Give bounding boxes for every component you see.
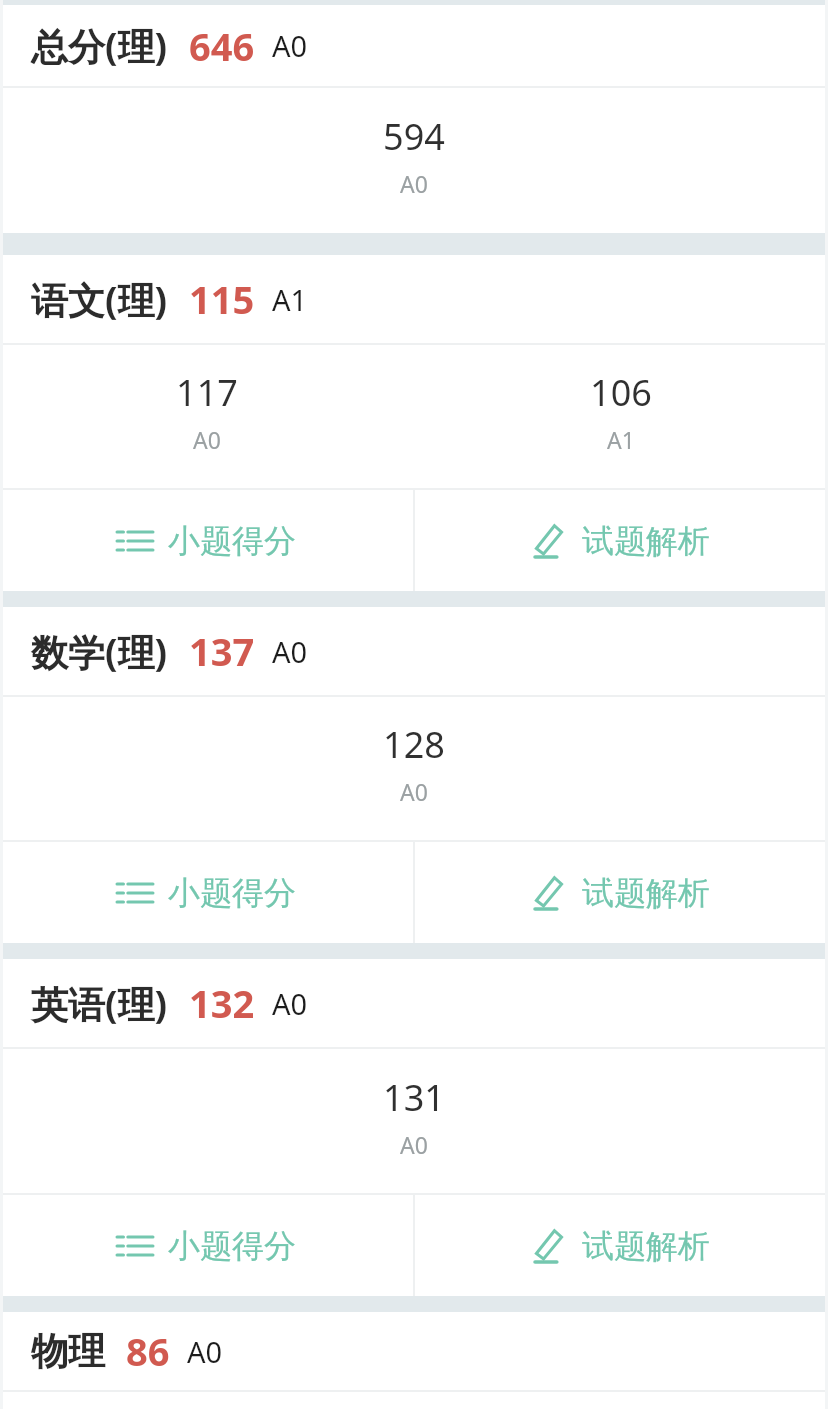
button[interactable]: 131 [0,1049,828,1193]
staticText: 小题得分 [168,521,296,561]
staticText: 小题得分 [168,1226,296,1266]
staticText: 86 [126,1325,170,1377]
staticText: 131 [383,1073,445,1122]
button[interactable]: 小题得分 [0,1195,413,1296]
staticText: A0 [400,776,428,807]
button[interactable]: 总分(理) [0,5,828,86]
staticText: A0 [193,424,221,455]
staticText: A0 [272,26,308,65]
staticText: A1 [272,280,308,319]
staticText: 试题解析 [582,1226,710,1266]
staticText: 106 [590,368,652,417]
staticText: 试题解析 [582,873,710,913]
staticText: 物理 [31,1328,105,1375]
staticText: A0 [272,632,308,671]
staticText: 英语(理) [31,978,168,1029]
staticText: 128 [383,720,445,769]
button[interactable]: 128 [0,697,828,840]
staticText: A0 [187,1332,223,1371]
staticText: A0 [272,984,308,1023]
staticText: 115 [189,273,255,325]
button[interactable]: 试题解析 [415,1195,828,1296]
staticText: 小题得分 [168,873,296,913]
button[interactable]: 语文(理) [0,255,828,343]
staticText: 646 [189,20,255,72]
staticText: 试题解析 [582,521,710,561]
button[interactable]: 数学(理) [0,607,828,695]
staticText: 数学(理) [31,626,168,677]
staticText: A1 [607,424,635,455]
staticText: 594 [383,112,445,161]
button[interactable]: 物理 [0,1312,828,1390]
button[interactable]: 试题解析 [415,490,828,591]
button[interactable]: 小题得分 [0,842,413,943]
staticText: 117 [176,368,238,417]
staticText: 132 [189,977,255,1029]
button[interactable]: 试题解析 [415,842,828,943]
staticText: 137 [189,625,255,677]
staticText: A0 [400,168,428,199]
staticText: A0 [400,1129,428,1160]
staticText: 总分(理) [31,20,168,71]
staticText: 语文(理) [31,274,168,325]
button[interactable]: 594 [0,88,828,233]
button[interactable]: 英语(理) [0,959,828,1047]
button[interactable]: 小题得分 [0,490,413,591]
